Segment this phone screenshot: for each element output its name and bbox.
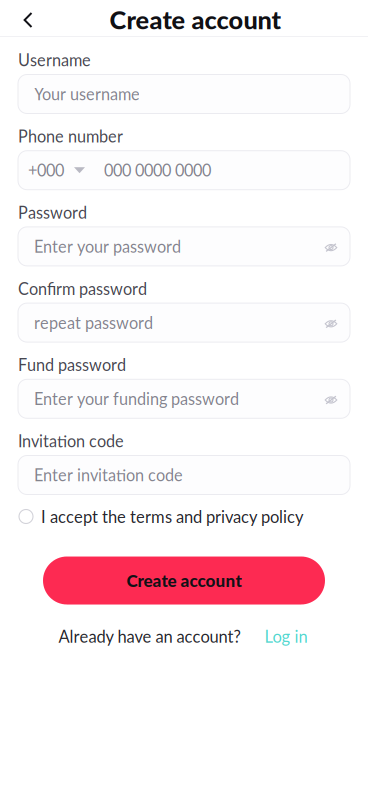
staticText: Enter invitation code	[34, 465, 183, 485]
button[interactable]: Create account	[43, 556, 325, 604]
staticText: Password	[18, 203, 87, 222]
staticText: 000 0000 0000	[104, 160, 211, 180]
staticText: Create account	[126, 570, 241, 591]
button[interactable]: Log in	[240, 621, 309, 651]
button[interactable]: Show Enter your funding password	[319, 386, 343, 412]
staticText: Enter your funding password	[34, 389, 239, 408]
staticText: Your username	[34, 84, 140, 104]
staticText: I accept the terms and privacy policy	[41, 507, 304, 526]
button[interactable]: I accept the terms and privacy policy	[18, 505, 350, 527]
staticText: Phone number	[18, 126, 123, 146]
staticText: +000	[28, 160, 64, 180]
button[interactable]: Show Enter your password	[319, 233, 343, 259]
staticText: Create account	[109, 4, 281, 35]
staticText: Log in	[264, 626, 307, 646]
staticText: Confirm password	[18, 279, 147, 298]
staticText: Enter your password	[34, 237, 181, 256]
staticText: Already have an account?	[58, 626, 240, 646]
staticText: Username	[18, 50, 91, 70]
staticText: Fund password	[18, 355, 126, 374]
staticText: Invitation code	[18, 431, 124, 451]
staticText: repeat password	[34, 313, 153, 332]
button[interactable]: Country code	[28, 160, 85, 180]
button[interactable]: Show repeat password	[319, 310, 343, 336]
button[interactable]: Back	[11, 2, 45, 38]
